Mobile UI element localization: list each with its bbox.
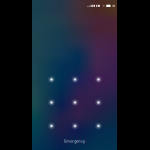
button[interactable]: Pattern dot 9 [94,121,103,130]
button[interactable]: Pattern dot 3 [94,75,103,84]
staticText: Emergency [64,138,85,143]
button[interactable]: Emergency [62,137,87,144]
button[interactable]: Pattern dot 7 [47,121,56,130]
button[interactable]: Pattern dot 5 [70,98,79,107]
button[interactable]: Pattern dot 8 [70,121,79,130]
button[interactable]: Pattern dot 2 [70,75,79,84]
button[interactable]: Pattern dot 1 [47,75,56,84]
button[interactable]: Pattern dot 4 [47,98,56,107]
button[interactable]: Pattern dot 6 [94,98,103,107]
